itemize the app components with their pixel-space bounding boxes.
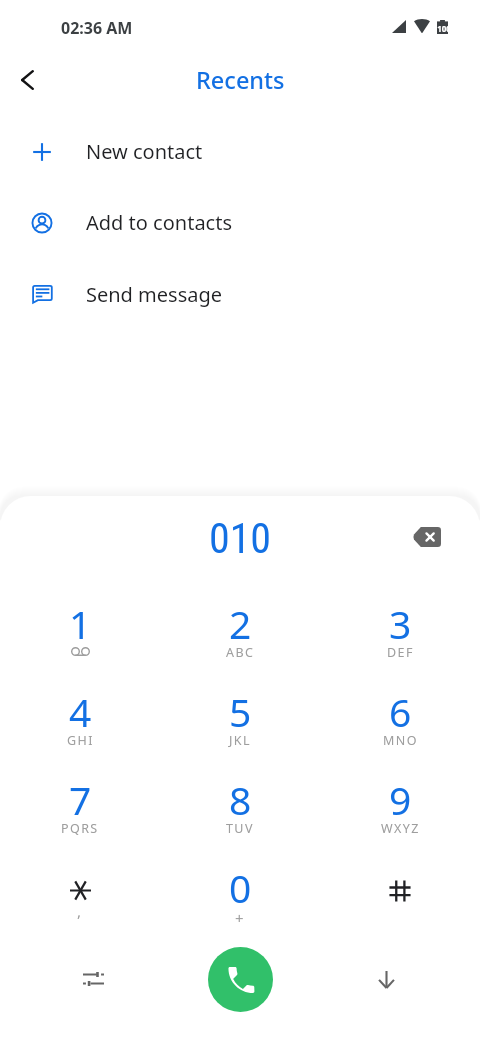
staticText: 3	[389, 597, 412, 650]
button[interactable]: ,	[0, 846, 160, 934]
staticText: +	[235, 908, 245, 928]
button[interactable]: Add to contacts	[0, 187, 480, 258]
staticText: 0	[229, 861, 252, 914]
button[interactable]: New contact	[0, 116, 480, 187]
staticText: WXYZ	[381, 820, 420, 837]
staticText: MNO	[383, 732, 418, 749]
staticText: TUV	[226, 820, 254, 837]
staticText: Recents	[196, 64, 285, 96]
button[interactable]: Call	[208, 947, 273, 1012]
staticText: PQRS	[61, 820, 99, 837]
button[interactable]: 4	[0, 670, 160, 758]
button[interactable]: Send message	[0, 259, 480, 330]
staticText: 2	[229, 597, 252, 650]
staticText: Send message	[86, 281, 223, 308]
staticText: Add to contacts	[86, 209, 232, 236]
staticText: 5	[229, 685, 252, 738]
staticText: ABC	[226, 644, 255, 661]
staticText: JKL	[229, 732, 251, 749]
staticText: 6	[389, 685, 412, 738]
staticText: 8	[229, 773, 252, 826]
button[interactable]: 8	[160, 758, 320, 846]
staticText: 010	[0, 514, 480, 563]
button[interactable]: Backspace	[409, 519, 445, 555]
button[interactable]: 3	[320, 582, 480, 670]
button[interactable]: Hide dialpad	[363, 956, 409, 1002]
button[interactable]: Dialpad options	[70, 956, 116, 1002]
button[interactable]: 7	[0, 758, 160, 846]
button[interactable]	[320, 846, 480, 934]
staticText: 100	[437, 23, 448, 34]
staticText: New contact	[86, 138, 203, 165]
staticText: 02:36 AM	[61, 17, 133, 39]
button[interactable]: 5	[160, 670, 320, 758]
button[interactable]: 0	[160, 846, 320, 934]
staticText: 4	[69, 685, 92, 738]
staticText: 7	[69, 773, 92, 826]
button[interactable]: Back	[3, 56, 51, 104]
staticText: 1	[69, 597, 92, 650]
button[interactable]: 1	[0, 582, 160, 670]
button[interactable]: 2	[160, 582, 320, 670]
button[interactable]: 6	[320, 670, 480, 758]
button[interactable]: 9	[320, 758, 480, 846]
staticText: ,	[77, 901, 83, 921]
staticText: DEF	[387, 644, 414, 661]
staticText: GHI	[67, 732, 94, 749]
staticText: 9	[389, 773, 412, 826]
